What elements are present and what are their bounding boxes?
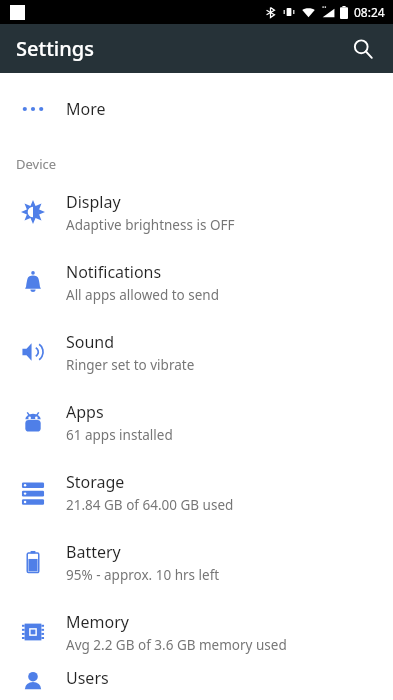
button[interactable]: Sound xyxy=(0,317,393,387)
staticText: Ringer set to vibrate xyxy=(66,356,195,374)
button[interactable]: Notifications xyxy=(0,247,393,317)
staticText: Notifications xyxy=(66,261,162,283)
staticText: Apps xyxy=(66,401,104,423)
staticText: Sound xyxy=(66,331,115,353)
staticText: 08:24 xyxy=(354,4,385,20)
button[interactable]: Memory xyxy=(0,597,393,667)
staticText: Avg 2.2 GB of 3.6 GB memory used xyxy=(66,636,287,654)
button[interactable]: Apps xyxy=(0,387,393,457)
staticText: Adaptive brightness is OFF xyxy=(66,216,235,234)
button[interactable]: Battery xyxy=(0,527,393,597)
staticText: 95% - approx. 10 hrs left xyxy=(66,566,220,584)
staticText: More xyxy=(66,98,106,120)
staticText: 21.84 GB of 64.00 GB used xyxy=(66,496,234,514)
button[interactable]: Display xyxy=(0,177,393,247)
staticText: Storage xyxy=(66,471,125,493)
staticText: Users xyxy=(66,667,109,689)
button[interactable]: Storage xyxy=(0,457,393,527)
button[interactable]: Search xyxy=(341,27,385,71)
button[interactable]: Users xyxy=(0,667,393,700)
staticText: Memory xyxy=(66,611,129,633)
staticText: Battery xyxy=(66,541,121,563)
staticText: 61 apps installed xyxy=(66,426,173,444)
staticText: All apps allowed to send xyxy=(66,286,220,304)
staticText: Display xyxy=(66,191,121,213)
staticText: Settings xyxy=(16,35,94,62)
button[interactable]: More xyxy=(0,87,393,131)
staticText: Device xyxy=(16,155,57,173)
